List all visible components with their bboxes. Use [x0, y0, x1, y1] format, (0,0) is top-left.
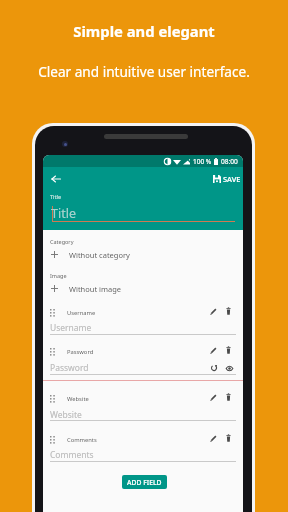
button[interactable]: Delete Comments [221, 431, 235, 445]
staticText: Username [67, 309, 96, 317]
staticText: Clear and intuitive user interface. [0, 62, 288, 81]
staticText: Password [67, 348, 94, 356]
staticText: Username [50, 322, 92, 334]
button[interactable]: Back [45, 168, 66, 189]
staticText: Password [50, 362, 89, 374]
button[interactable]: Edit Website [206, 390, 220, 404]
staticText: Without image [69, 284, 122, 294]
staticText: Category [50, 238, 74, 245]
staticText: SAVE [223, 174, 241, 184]
button[interactable]: Delete Username [221, 304, 235, 318]
staticText: Without category [69, 250, 130, 260]
staticText: Website [50, 409, 82, 421]
button[interactable] [43, 237, 243, 267]
staticText: Title [50, 193, 61, 200]
staticText: Simple and elegant [0, 21, 288, 41]
button[interactable]: Delete Password [221, 343, 235, 357]
staticText: Image [50, 272, 67, 279]
button[interactable] [43, 271, 243, 301]
staticText: Comments [67, 436, 97, 444]
button[interactable]: SAVE [210, 171, 243, 187]
button[interactable]: ADD FIELD [122, 475, 167, 489]
staticText: Website [67, 395, 89, 403]
staticText: Comments [50, 449, 94, 461]
button[interactable]: Generate password [208, 362, 220, 374]
staticText: Title [51, 205, 76, 222]
staticText: ADD FIELD [127, 478, 162, 487]
button[interactable]: Show password [223, 362, 235, 374]
button[interactable]: Edit Comments [206, 431, 220, 445]
button[interactable]: Delete Website [221, 390, 235, 404]
button[interactable]: Edit Password [206, 343, 220, 357]
staticText: 100 % [193, 157, 212, 166]
staticText: 08:00 [221, 157, 238, 166]
button[interactable]: Edit Username [206, 304, 220, 318]
